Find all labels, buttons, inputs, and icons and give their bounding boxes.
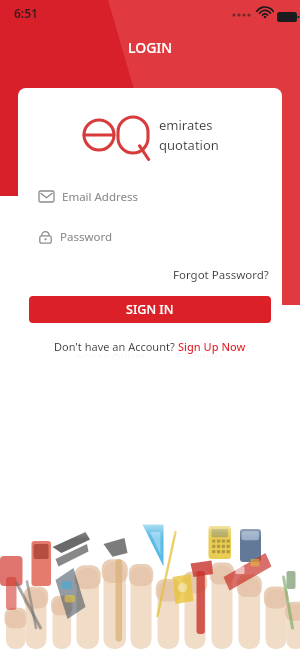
staticText: Sign Up Now bbox=[178, 339, 246, 354]
staticText: Forgot Password? bbox=[173, 267, 269, 283]
staticText: Password bbox=[60, 229, 113, 245]
staticText: "Emirates Quotation Provider" Would Like… bbox=[30, 255, 270, 291]
staticText: SIGN IN bbox=[126, 301, 174, 318]
staticText: emirates bbox=[159, 116, 213, 134]
staticText: Don't have an Account? bbox=[54, 339, 178, 354]
staticText: LOGIN bbox=[128, 38, 173, 57]
staticText: be configured in Settings bbox=[85, 307, 215, 322]
staticText: Allow bbox=[191, 344, 224, 362]
button[interactable]: Email Address bbox=[29, 182, 271, 211]
button[interactable]: Password bbox=[29, 222, 271, 251]
button[interactable]: Forgot Password? bbox=[171, 265, 271, 285]
staticText: quotation bbox=[159, 136, 219, 154]
staticText: 6:51 bbox=[14, 5, 38, 21]
staticText: Don't Allow bbox=[76, 344, 146, 362]
staticText: Email Address bbox=[62, 189, 139, 205]
button[interactable]: SIGN IN bbox=[29, 296, 271, 323]
button[interactable]: Sign Up Now bbox=[178, 339, 246, 354]
